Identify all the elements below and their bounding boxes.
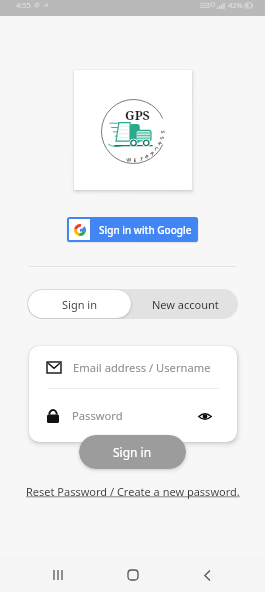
button[interactable]: Home <box>120 562 146 588</box>
button[interactable]: Sign in with Google <box>67 217 198 242</box>
button[interactable]: New account <box>132 289 238 319</box>
staticText: 4:55 <box>16 0 31 10</box>
button[interactable]: Sign in <box>79 435 186 469</box>
staticText: Sign in <box>62 297 97 312</box>
staticText: Reset Password / Create a new password. <box>26 484 240 499</box>
staticText: Email address / Username <box>73 360 211 375</box>
staticText: 42% <box>228 0 243 10</box>
button[interactable]: Sign in <box>28 290 131 318</box>
button[interactable]: Email address / Username <box>47 346 219 388</box>
staticText: Password <box>72 408 123 423</box>
staticText: Sign in <box>113 444 152 460</box>
button[interactable]: Back <box>194 562 220 588</box>
button[interactable]: Show password <box>197 408 213 424</box>
staticText: GPS <box>125 107 150 124</box>
button[interactable]: Recent apps <box>45 562 71 588</box>
button[interactable]: Reset Password / Create a new password. <box>24 483 242 500</box>
staticText: Sign in with Google <box>99 223 192 237</box>
staticText: New account <box>152 297 219 312</box>
button[interactable]: Password <box>47 389 213 442</box>
